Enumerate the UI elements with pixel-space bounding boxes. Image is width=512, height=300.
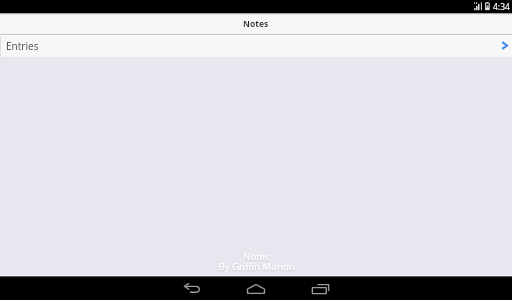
staticText: 4:34 [493,1,510,13]
staticText: Entries [6,39,39,53]
button[interactable]: Recents [288,276,352,300]
button[interactable]: Home [224,276,288,300]
staticText: Notes [243,18,269,30]
button[interactable]: Back [160,276,224,300]
staticText: Notes [243,250,270,262]
staticText: By Griffin Marion [218,260,295,272]
button[interactable]: Entries [0,36,512,57]
